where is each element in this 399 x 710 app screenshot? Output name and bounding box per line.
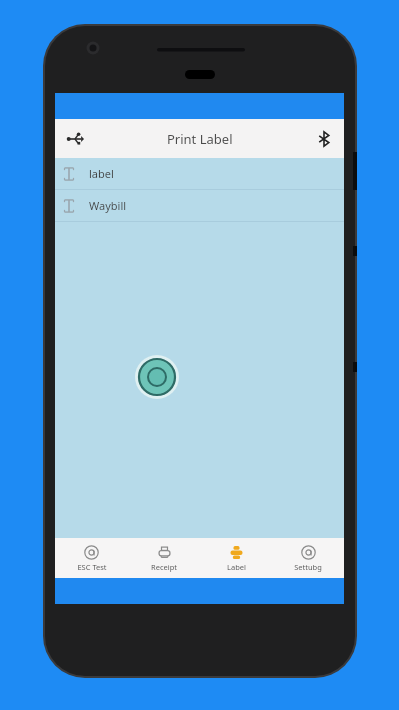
- staticText: Waybill: [89, 198, 127, 213]
- staticText: label: [89, 166, 114, 181]
- staticText: Settubg: [294, 562, 322, 572]
- button[interactable]: Bluetooth: [304, 119, 344, 158]
- button[interactable]: Label: [200, 538, 272, 578]
- button[interactable]: ESC Test: [55, 538, 128, 578]
- staticText: Receipt: [151, 562, 177, 572]
- button[interactable]: Receipt: [128, 538, 200, 578]
- staticText: Label: [227, 562, 246, 572]
- staticText: ESC Test: [77, 562, 107, 572]
- button[interactable]: Waybill: [55, 190, 344, 222]
- button[interactable]: USB: [55, 119, 95, 158]
- other: Loading: [135, 355, 179, 399]
- staticText: Print Label: [167, 130, 233, 148]
- button[interactable]: label: [55, 158, 344, 190]
- button[interactable]: Settubg: [272, 538, 344, 578]
